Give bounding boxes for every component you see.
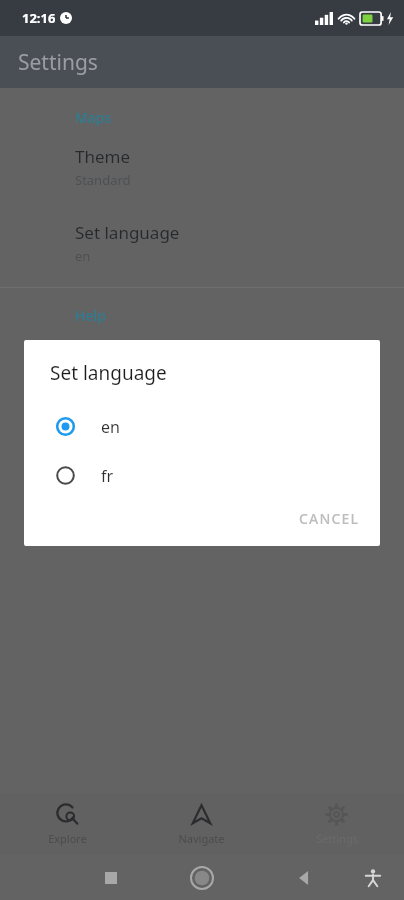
staticText: Set language	[50, 360, 167, 386]
button[interactable]: Accessibility	[360, 865, 386, 891]
staticText: Explore	[48, 831, 87, 846]
staticText: Navigate	[178, 831, 225, 846]
button[interactable]: en	[24, 402, 380, 451]
staticText: en	[75, 247, 91, 265]
button[interactable]: Set language	[0, 219, 404, 267]
button[interactable]: CANCEL	[279, 501, 380, 536]
staticText: Settings	[18, 48, 98, 77]
button[interactable]: Recent apps	[98, 865, 124, 891]
staticText: Help	[75, 306, 106, 325]
button[interactable]: fr	[24, 451, 380, 500]
staticText: CANCEL	[299, 509, 360, 528]
staticText: Theme	[75, 145, 131, 168]
button[interactable]: Home	[187, 863, 217, 893]
button[interactable]: Explore	[0, 797, 134, 852]
staticText: Maps	[75, 108, 112, 127]
button[interactable]: Navigate	[134, 797, 269, 852]
staticText: Set language	[75, 221, 180, 244]
button[interactable]: Back	[292, 865, 318, 891]
button[interactable]: Theme	[0, 143, 404, 191]
staticText: en	[101, 416, 120, 438]
staticText: 12:16	[22, 9, 56, 27]
staticText: Standard	[75, 171, 131, 189]
staticText: fr	[101, 465, 114, 487]
